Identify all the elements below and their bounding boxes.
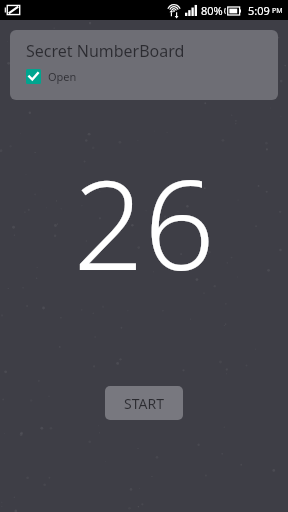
- button[interactable]: Secret NumberBoard: [10, 30, 278, 100]
- staticText: PM: [272, 6, 283, 16]
- other: Open checkbox, checked: [26, 69, 41, 84]
- staticText: Secret NumberBoard: [26, 40, 185, 62]
- staticText: START: [124, 394, 164, 413]
- button[interactable]: START: [105, 386, 183, 420]
- staticText: 5:09: [248, 3, 270, 18]
- other: No SIM: [5, 4, 21, 16]
- button[interactable]: Open checkbox, checked: [26, 69, 77, 84]
- staticText: Open: [48, 69, 77, 84]
- staticText: 80%: [201, 3, 223, 18]
- staticText: 26: [73, 137, 215, 306]
